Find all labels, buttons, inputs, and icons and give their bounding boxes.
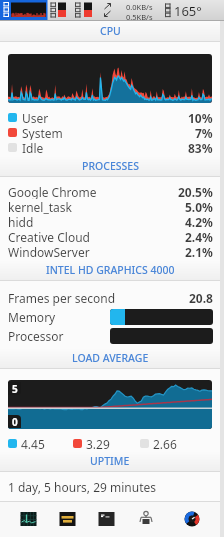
button[interactable]: iStat Menus xyxy=(175,502,191,537)
button[interactable]: 2.66 xyxy=(140,436,177,451)
staticText: 1 day, 5 hours, 29 minutes xyxy=(8,479,157,495)
staticText: 20.5% xyxy=(178,184,213,199)
staticText: UPTIME xyxy=(90,454,130,468)
button[interactable]: Warner Music xyxy=(59,502,75,537)
staticText: Memory xyxy=(8,309,56,325)
staticText: 0.0KB/s xyxy=(126,2,153,12)
button[interactable]: Processor xyxy=(8,326,213,345)
button[interactable]: Terminal xyxy=(98,502,114,537)
staticText: 7% xyxy=(195,125,213,140)
staticText: Frames per second xyxy=(8,290,116,306)
staticText: Creative Cloud xyxy=(8,229,90,244)
staticText: 165° xyxy=(174,2,202,20)
button[interactable]: System xyxy=(8,125,213,140)
staticText: Processor xyxy=(8,328,64,344)
button[interactable]: WindowServer xyxy=(8,244,213,259)
staticText: kernel_task xyxy=(8,199,72,214)
staticText: 0.5KB/s xyxy=(126,12,153,22)
staticText: 3.29 xyxy=(86,436,110,451)
staticText: 5 xyxy=(12,382,18,395)
staticText: 4.45 xyxy=(21,436,45,451)
button[interactable]: Frames per second xyxy=(8,288,213,307)
staticText: hidd xyxy=(8,214,34,229)
staticText: 2.66 xyxy=(153,436,177,451)
staticText: LOAD AVERAGE xyxy=(72,351,149,365)
staticText: User xyxy=(22,110,49,125)
staticText: 83% xyxy=(188,140,213,155)
button[interactable]: kernel_task xyxy=(8,199,213,214)
staticText: System xyxy=(22,125,63,140)
button[interactable]: User xyxy=(8,110,213,125)
button[interactable]: Creative Cloud xyxy=(8,229,213,244)
button[interactable]: Google Chrome xyxy=(8,184,213,199)
staticText: 5.0% xyxy=(185,199,213,214)
staticText: Google Chrome xyxy=(8,184,97,199)
staticText: PROCESSES xyxy=(82,159,139,173)
staticText: CPU xyxy=(100,24,121,38)
button[interactable]: Activity Monitor xyxy=(20,502,36,537)
staticText: INTEL HD GRAPHICS 4000 xyxy=(46,263,175,277)
staticText: 0 xyxy=(12,415,18,428)
staticText: WindowServer xyxy=(8,244,90,259)
staticText: 10% xyxy=(188,110,213,125)
staticText: 2.4% xyxy=(185,229,213,244)
button[interactable]: Memory xyxy=(8,307,213,326)
staticText: 20.8 xyxy=(189,290,213,306)
button[interactable]: 4.45 xyxy=(8,436,45,451)
button[interactable]: hidd xyxy=(8,214,213,229)
button[interactable]: 1 day, 5 hours, 29 minutes xyxy=(8,472,220,501)
button[interactable]: Console xyxy=(137,502,153,537)
button[interactable]: 3.29 xyxy=(73,436,110,451)
staticText: Idle xyxy=(22,140,44,155)
staticText: 2.1% xyxy=(185,244,213,259)
button[interactable]: Idle xyxy=(8,140,213,155)
staticText: 4.2% xyxy=(185,214,213,229)
